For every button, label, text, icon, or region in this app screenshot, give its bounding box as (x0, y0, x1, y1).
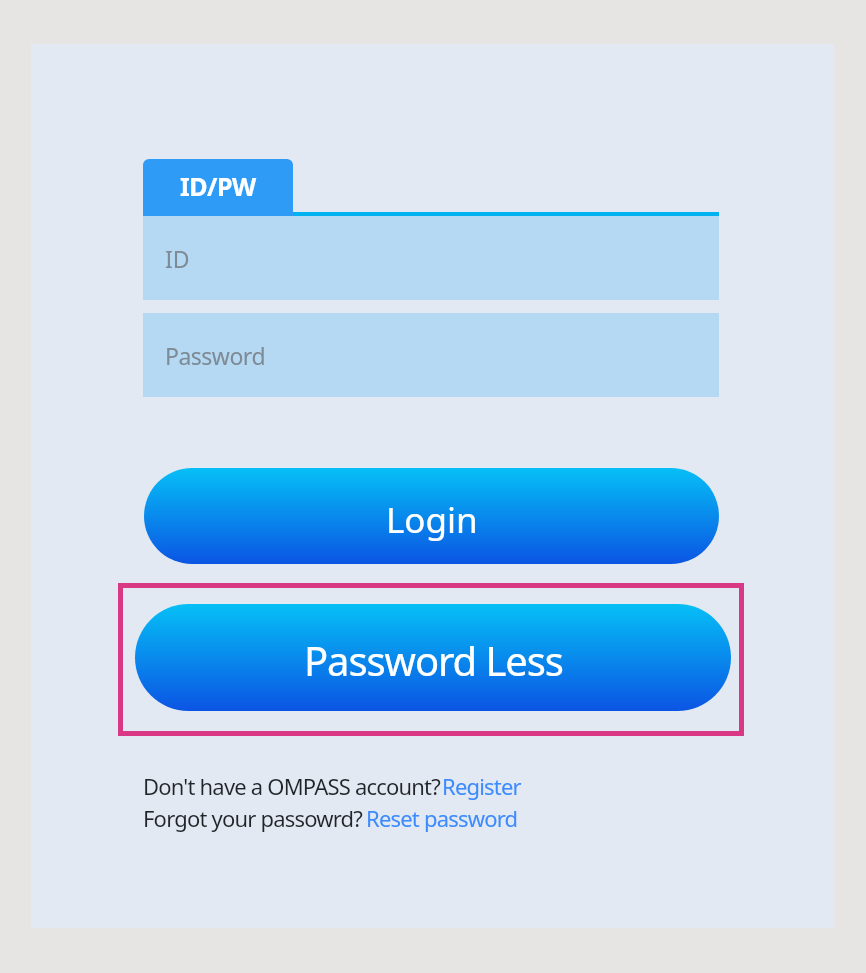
staticText: ID (165, 243, 190, 274)
button[interactable]: Reset password (366, 803, 518, 833)
button[interactable]: ID/PW (143, 159, 293, 216)
button[interactable]: Login (144, 468, 719, 564)
staticText: ID/PW (180, 169, 256, 203)
staticText: Register (442, 771, 521, 801)
staticText: Login (386, 496, 478, 544)
button[interactable]: Password Less (135, 604, 731, 711)
staticText: Don't have a OMPASS account? (143, 771, 440, 801)
staticText: Password (165, 340, 266, 371)
staticText: Reset password (366, 803, 518, 833)
button[interactable]: Register (442, 771, 521, 801)
staticText: Forgot your passowrd? (143, 803, 363, 833)
staticText: Password Less (304, 633, 563, 687)
button[interactable]: ID (143, 216, 719, 300)
button[interactable]: Password (143, 313, 719, 397)
